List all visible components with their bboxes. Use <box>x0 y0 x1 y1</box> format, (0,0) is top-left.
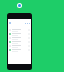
button[interactable] <box>8 40 31 44</box>
button[interactable] <box>8 36 31 40</box>
button[interactable] <box>8 32 31 36</box>
button[interactable] <box>8 48 31 52</box>
button[interactable] <box>8 44 31 48</box>
button[interactable]: App logo <box>17 3 22 8</box>
button[interactable] <box>8 28 31 32</box>
